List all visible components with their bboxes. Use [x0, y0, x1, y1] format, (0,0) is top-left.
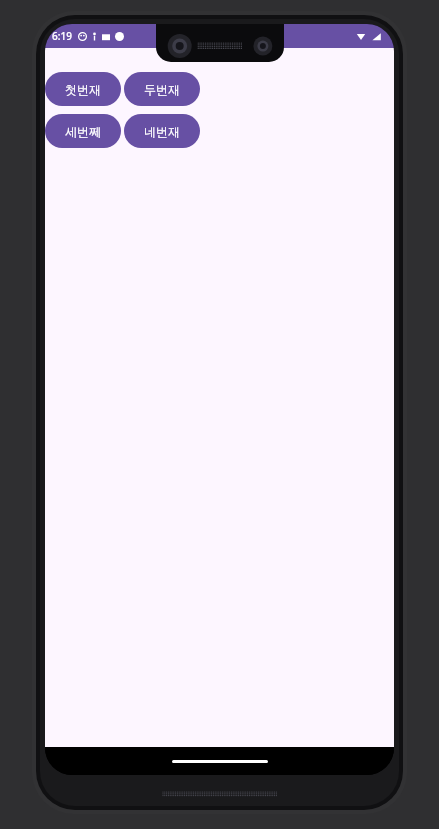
staticText: 첫번재 [65, 82, 101, 97]
staticText: 두번재 [144, 82, 180, 97]
staticText: 세번쩨 [65, 124, 101, 139]
staticText: 6:19 [52, 29, 72, 43]
button[interactable]: 네번재 [124, 114, 200, 148]
button[interactable]: 첫번재 [45, 72, 121, 106]
button[interactable]: 두번재 [124, 72, 200, 106]
button[interactable]: 세번쩨 [45, 114, 121, 148]
staticText: 네번재 [144, 124, 180, 139]
